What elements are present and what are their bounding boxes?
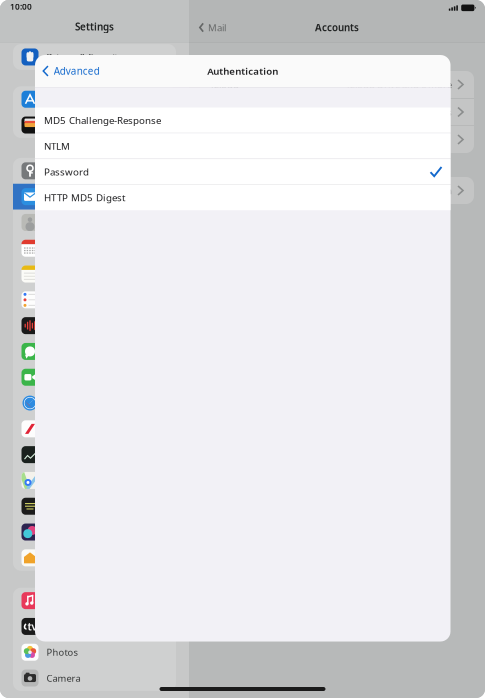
staticText: Mail, Contacts <box>390 105 452 119</box>
button[interactable]: Photos <box>13 639 176 665</box>
button[interactable]: Mail <box>189 14 226 41</box>
staticText: Wallet <box>46 119 71 131</box>
button[interactable]: Messages <box>13 338 176 364</box>
button[interactable]: Translate <box>13 493 176 519</box>
button[interactable]: Password <box>35 159 450 184</box>
staticText: iCloud Drive and 6 more <box>347 78 452 91</box>
button[interactable]: Fetch New Data <box>200 177 474 204</box>
staticText: NTLM <box>44 139 70 153</box>
button[interactable]: Advanced <box>35 55 108 87</box>
staticText: Authentication <box>207 64 278 78</box>
button[interactable]: Gmail <box>200 98 474 125</box>
staticText: Privacy & Security <box>46 51 122 63</box>
button[interactable]: Music <box>13 588 176 614</box>
button[interactable]: iCloud <box>200 71 474 98</box>
button[interactable]: Voice Memos <box>13 313 176 338</box>
staticText: Passwords <box>46 164 92 177</box>
button[interactable]: MD5 Challenge-Response <box>35 107 450 133</box>
button[interactable]: Camera <box>13 665 176 691</box>
staticText: Gmail <box>211 105 236 119</box>
button[interactable]: Stocks <box>13 442 176 468</box>
button[interactable]: App Store <box>13 86 176 112</box>
button[interactable]: Notes <box>13 261 176 287</box>
button[interactable]: Calendar <box>13 235 176 261</box>
staticText: 10:00 <box>10 1 32 12</box>
button[interactable]: Mail <box>13 184 176 209</box>
button[interactable]: News <box>13 416 176 442</box>
staticText: Push <box>429 184 452 197</box>
button[interactable]: Wallet <box>13 112 176 138</box>
staticText: Camera <box>46 672 80 684</box>
button[interactable]: Maps <box>13 467 176 493</box>
button[interactable]: Shortcuts <box>13 519 176 545</box>
button[interactable]: NTLM <box>35 133 450 159</box>
button[interactable]: Passwords <box>13 158 176 184</box>
staticText: tv <box>27 619 37 634</box>
staticText: Advanced <box>54 64 100 78</box>
staticText: Accounts <box>315 21 359 34</box>
button[interactable]: Privacy & Security <box>13 44 176 70</box>
button[interactable]: Home <box>13 545 176 571</box>
staticText: HTTP MD5 Digest <box>44 191 126 204</box>
button[interactable]: tv <box>13 613 176 639</box>
button[interactable]: FaceTime <box>13 364 176 390</box>
button[interactable]: Add Account <box>200 126 474 153</box>
button[interactable]: HTTP MD5 Digest <box>35 185 450 210</box>
staticText: MD5 Challenge-Response <box>44 113 161 127</box>
button[interactable]: Safari <box>13 390 176 416</box>
staticText: Password <box>44 165 89 178</box>
staticText: Mail <box>46 190 63 203</box>
staticText: Fetch New Data <box>211 184 279 197</box>
staticText: Mail <box>208 21 226 34</box>
button[interactable]: Reminders <box>13 287 176 313</box>
staticText: iCloud <box>211 78 239 91</box>
staticText: Photos <box>46 646 77 659</box>
staticText: Settings <box>75 20 114 33</box>
button[interactable]: Contacts <box>13 209 176 235</box>
